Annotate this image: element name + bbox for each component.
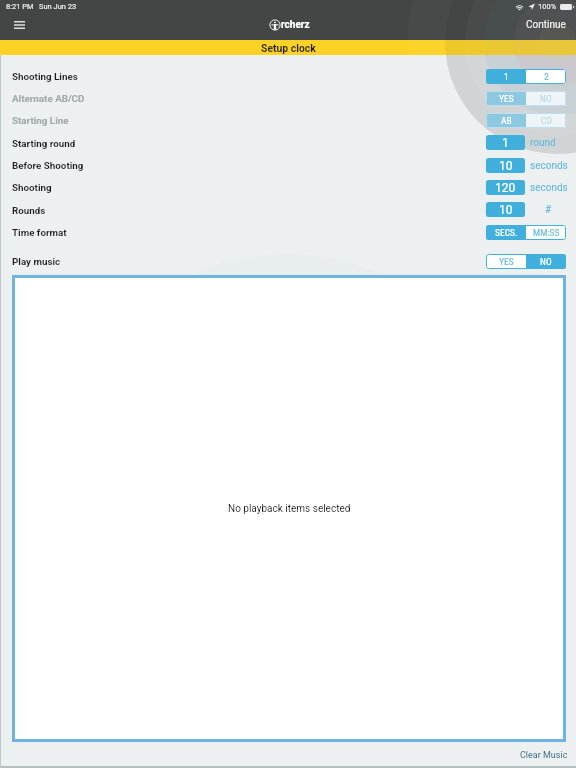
staticText: 8:21 PM <box>6 2 34 11</box>
button[interactable]: Clear Music <box>516 748 572 763</box>
staticText: 2 <box>544 71 549 82</box>
button[interactable]: 1 <box>486 69 566 84</box>
staticText: YES <box>499 256 514 267</box>
button[interactable]: Shooting Lines <box>0 65 576 87</box>
button[interactable]: Before Shooting <box>0 154 576 176</box>
staticText: Starting round <box>12 138 76 149</box>
staticText: AB <box>501 115 512 126</box>
staticText: Before Shooting <box>12 160 84 171</box>
button[interactable]: 10 <box>486 202 525 217</box>
staticText: Clear Music <box>520 750 568 761</box>
button[interactable]: Play music <box>0 250 576 272</box>
staticText: 10 <box>499 159 513 173</box>
staticText: Play music <box>12 256 61 267</box>
button[interactable]: 1 <box>486 135 525 150</box>
button[interactable]: 10 <box>486 158 525 173</box>
staticText: 10 <box>499 203 513 217</box>
staticText: Alternate AB/CD <box>12 93 85 104</box>
staticText: Sun Jun 23 <box>39 2 77 11</box>
staticText: Starting Line <box>12 115 69 126</box>
staticText: round <box>530 137 556 149</box>
staticText: seconds <box>530 160 568 172</box>
button[interactable]: YES <box>486 91 566 106</box>
button[interactable]: 120 <box>486 180 525 195</box>
button[interactable]: Alternate AB/CD <box>0 87 576 109</box>
button[interactable]: Menu <box>7 13 31 37</box>
button[interactable]: Continue <box>521 17 571 33</box>
staticText: NO <box>540 256 552 267</box>
button[interactable]: Shooting <box>0 176 576 198</box>
staticText: 1 <box>502 136 509 150</box>
staticText: Setup clock <box>261 42 316 54</box>
staticText: 1 <box>504 71 509 82</box>
staticText: Continue <box>526 19 566 31</box>
staticText: seconds <box>530 182 568 194</box>
button[interactable]: AB <box>486 113 566 128</box>
staticText: MM:SS <box>533 227 560 238</box>
staticText: NO <box>540 93 552 104</box>
staticText: Shooting Lines <box>12 71 78 82</box>
staticText: Shooting <box>12 182 52 193</box>
button[interactable]: Starting round <box>0 132 576 154</box>
staticText: CD <box>541 115 552 126</box>
staticText: YES <box>499 93 514 104</box>
button[interactable]: SECS. <box>486 225 566 240</box>
staticText: Time format <box>12 227 67 238</box>
staticText: # <box>545 204 552 216</box>
button[interactable]: Rounds <box>0 199 576 221</box>
staticText: SECS. <box>495 227 518 238</box>
button[interactable]: Time format <box>0 221 576 243</box>
staticText: rcherz <box>281 19 310 31</box>
staticText: Rounds <box>12 205 46 216</box>
staticText: 100% <box>538 2 557 11</box>
button[interactable]: YES <box>486 254 566 269</box>
staticText: 120 <box>495 181 516 195</box>
button[interactable]: Starting Line <box>0 109 576 131</box>
staticText: No playback items selected <box>228 503 351 515</box>
